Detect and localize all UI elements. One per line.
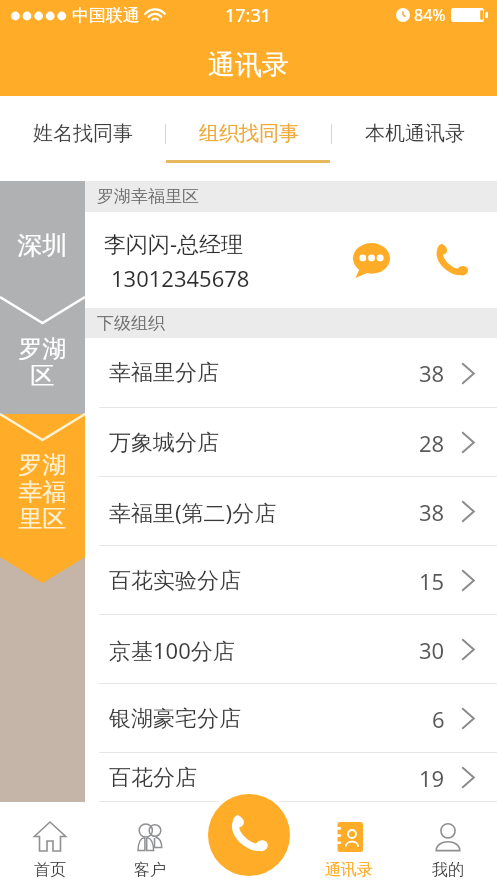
staticText: 本机通讯录 [365, 121, 465, 146]
staticText: 17:31 [225, 3, 272, 28]
button[interactable]: 客户 [100, 802, 200, 883]
button[interactable]: 李闪闪-总经理 [85, 212, 497, 308]
button[interactable]: 百花实验分店 [85, 546, 497, 615]
button[interactable]: 万象城分店 [85, 408, 497, 477]
staticText: 姓名找同事 [33, 121, 133, 146]
staticText: 幸福里(第二)分店 [109, 497, 419, 527]
button[interactable]: 银湖豪宅分店 [85, 684, 497, 753]
button[interactable]: Call [427, 235, 477, 285]
staticText: 银湖豪宅分店 [109, 705, 432, 733]
staticText: 客户 [134, 860, 166, 880]
staticText: 下级组织 [97, 313, 165, 334]
staticText: 幸福里分店 [109, 359, 419, 387]
staticText: 首页 [34, 860, 66, 880]
staticText: 30 [419, 635, 445, 665]
staticText: 万象城分店 [109, 429, 419, 457]
staticText: 84% [414, 4, 446, 26]
staticText: 百花分店 [109, 764, 419, 792]
staticText: 6 [432, 704, 445, 734]
button[interactable]: 通讯录 [299, 802, 398, 883]
button[interactable]: Send message [342, 231, 400, 289]
button[interactable]: 京基100分店 [85, 615, 497, 684]
staticText: 19 [419, 763, 445, 793]
button[interactable]: 百花分店 [85, 753, 497, 802]
button[interactable]: 罗湖区 [18, 334, 67, 391]
staticText: 38 [419, 497, 445, 527]
staticText: 百花实验分店 [109, 567, 419, 595]
button[interactable]: 我的 [398, 802, 497, 883]
staticText: 罗湖幸福里区 [97, 186, 199, 207]
staticText: 通讯录 [208, 48, 289, 82]
staticText: 15 [419, 566, 445, 596]
staticText: 通讯录 [325, 860, 373, 880]
staticText: 组织找同事 [199, 121, 299, 146]
button[interactable]: Dial [208, 794, 290, 876]
button[interactable]: 首页 [0, 802, 100, 883]
staticText: 28 [419, 428, 445, 458]
button[interactable]: 罗湖幸福里区 [18, 450, 67, 534]
button[interactable]: 深圳 [0, 230, 85, 261]
button[interactable]: 幸福里分店 [85, 338, 497, 408]
button[interactable]: 组织找同事 [166, 96, 331, 171]
button[interactable]: 姓名找同事 [0, 96, 165, 171]
button[interactable]: 本机通讯录 [332, 96, 497, 171]
button[interactable]: 幸福里(第二)分店 [85, 477, 497, 546]
staticText: 13012345678 [111, 263, 250, 293]
staticText: 李闪闪-总经理 [104, 228, 244, 258]
staticText: 我的 [432, 860, 464, 880]
staticText: 38 [419, 358, 445, 388]
staticText: 京基100分店 [109, 635, 419, 665]
staticText: 中国联通 [72, 5, 140, 26]
